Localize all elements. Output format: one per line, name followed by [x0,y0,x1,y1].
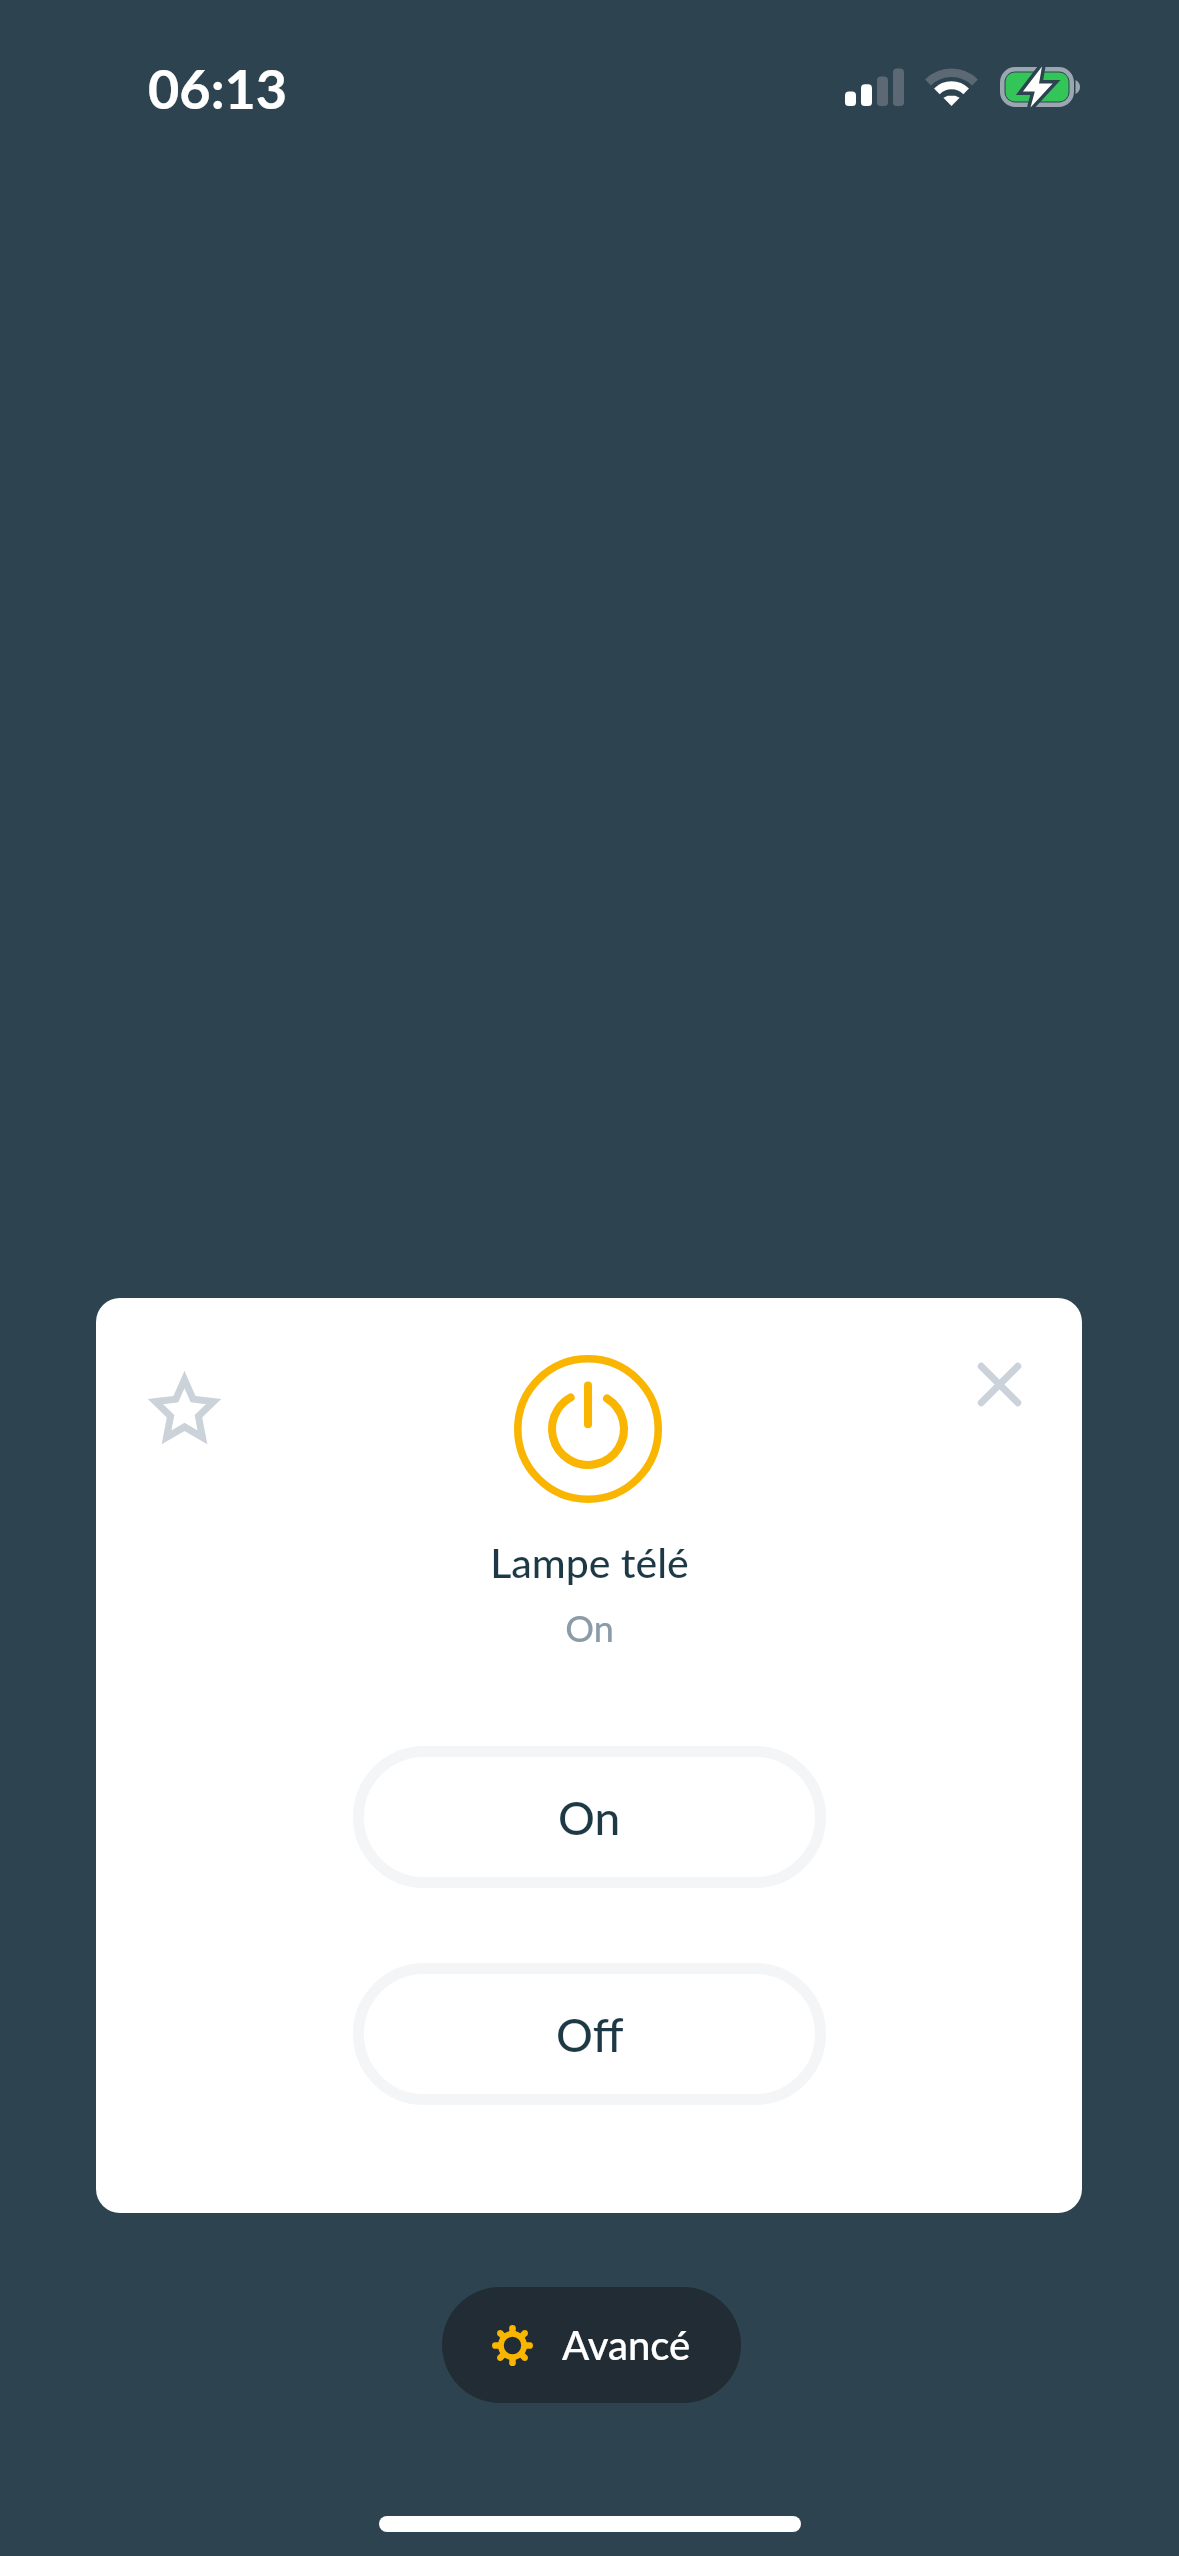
button[interactable]: Favourite [133,1357,235,1459]
staticText: On [558,1790,621,1845]
staticText: 06:13 [148,56,288,121]
staticText: Avancé [562,2321,691,2369]
button[interactable]: Close [954,1339,1044,1429]
button[interactable]: Avancé [442,2287,741,2403]
staticText: Lampe télé [490,1538,689,1587]
staticText: On [565,1606,614,1649]
button[interactable]: On [353,1746,826,1888]
staticText: Off [556,2007,624,2062]
button[interactable]: Power toggle [505,1346,671,1512]
button[interactable]: Off [353,1963,826,2105]
